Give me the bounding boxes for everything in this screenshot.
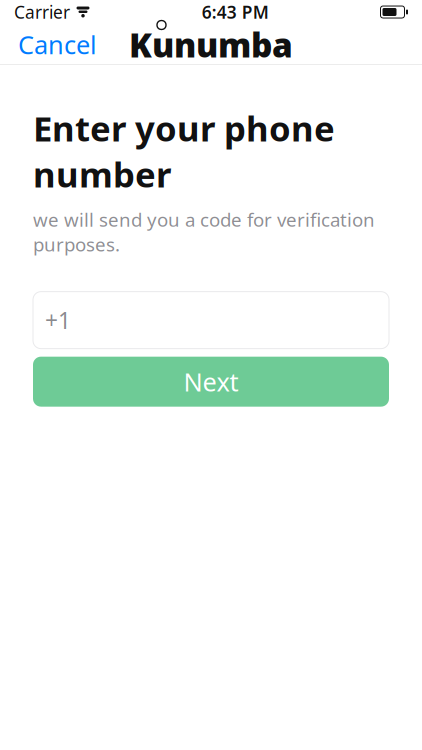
staticText: +1 [45, 305, 71, 335]
staticText: Next [183, 365, 238, 398]
staticText: Kunumba [129, 22, 293, 67]
button[interactable]: Phone number [33, 292, 389, 349]
button[interactable]: Cancel [0, 18, 115, 71]
staticText: we will send you a code for verification… [33, 207, 375, 257]
staticText: 6:43 PM [202, 0, 269, 23]
staticText: Enter your phone number [33, 105, 335, 197]
staticText: Cancel [18, 28, 97, 61]
button[interactable]: Next [33, 357, 389, 407]
staticText: Carrier [14, 0, 70, 23]
